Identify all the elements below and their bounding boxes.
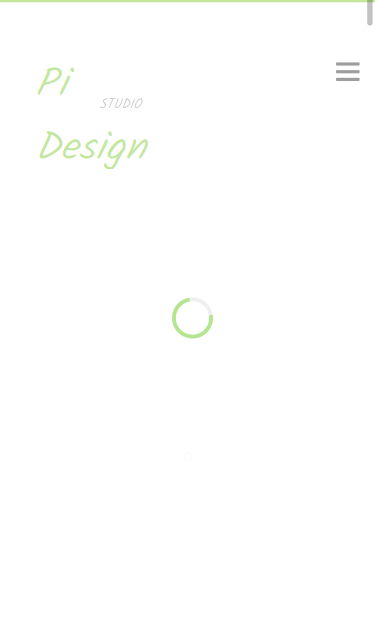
- button[interactable]: Pi Design: [35, 53, 235, 105]
- staticText: Pi Design: [35, 53, 197, 117]
- button[interactable]: Menu: [328, 53, 368, 92]
- staticText: STUDIO: [99, 95, 141, 115]
- staticText: Pi Design: [35, 53, 196, 117]
